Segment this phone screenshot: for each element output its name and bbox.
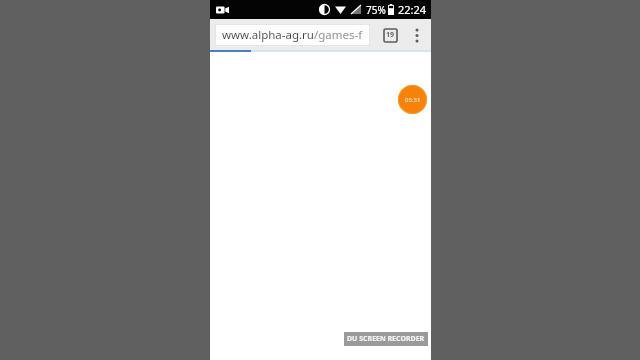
staticText: DU SCREEN RECORDER: [347, 334, 425, 344]
staticText: /games-f: [314, 27, 363, 43]
button[interactable]: Switch tabs, 19 open: [379, 24, 401, 46]
staticText: 22:24: [398, 2, 427, 17]
button[interactable]: Screen recorder controls: [398, 85, 427, 114]
button[interactable]: www.alpha-ag.ru: [215, 24, 370, 46]
button[interactable]: More options: [405, 23, 429, 47]
staticText: 19: [386, 30, 395, 40]
staticText: 75%: [366, 3, 386, 17]
staticText: 05:51: [405, 96, 421, 104]
staticText: www.alpha-ag.ru: [222, 27, 314, 43]
